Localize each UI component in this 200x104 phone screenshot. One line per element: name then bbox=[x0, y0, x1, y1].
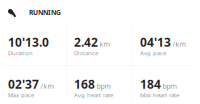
staticText: RUNNING bbox=[29, 8, 61, 17]
staticText: 02'37 bbox=[8, 76, 39, 92]
staticText: Avg heart rate bbox=[74, 91, 113, 99]
staticText: bpm bbox=[96, 81, 110, 91]
staticText: 168 bbox=[74, 76, 95, 92]
staticText: km bbox=[99, 39, 109, 49]
staticText: Max heart rate bbox=[140, 91, 179, 99]
staticText: 2.42 bbox=[74, 34, 98, 50]
staticText: Distance bbox=[74, 49, 98, 57]
staticText: /km bbox=[40, 81, 53, 91]
staticText: 10'13.0 bbox=[8, 34, 49, 50]
staticText: Max pace bbox=[8, 91, 34, 99]
staticText: Avg pace bbox=[140, 49, 166, 57]
staticText: /km bbox=[172, 39, 185, 49]
staticText: bpm bbox=[162, 81, 176, 91]
staticText: 184 bbox=[140, 76, 161, 92]
staticText: Duration bbox=[8, 49, 33, 57]
staticText: 04'13 bbox=[140, 34, 171, 50]
